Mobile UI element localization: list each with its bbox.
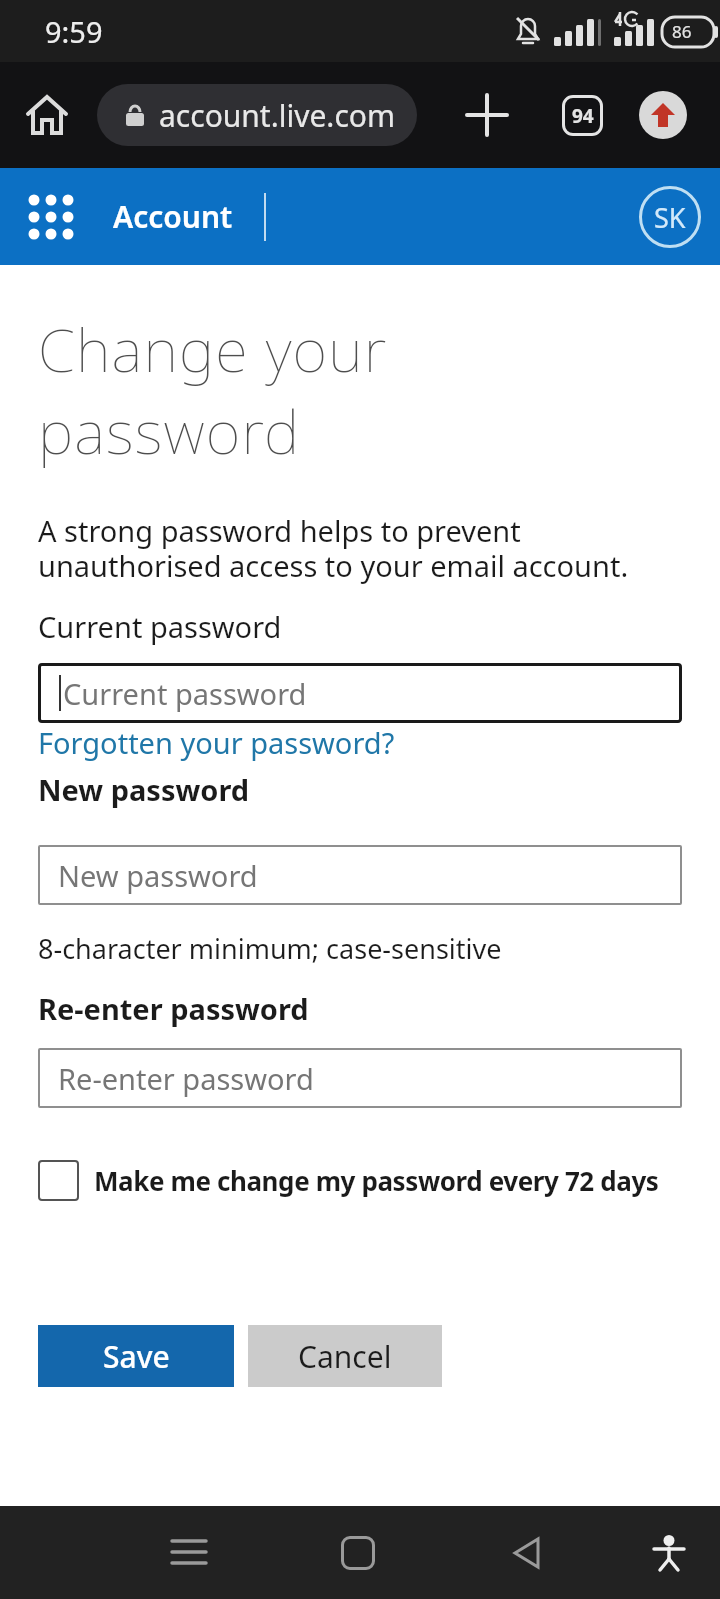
- button[interactable]: [28, 194, 73, 239]
- staticText: 8-character minimum; case-sensitive: [38, 930, 502, 967]
- button[interactable]: Forgotten your password?: [38, 723, 395, 762]
- staticText: account.live.com: [159, 95, 396, 136]
- button[interactable]: [639, 91, 687, 139]
- staticText: Re-enter password: [58, 1059, 314, 1098]
- staticText: 94: [572, 103, 594, 129]
- button[interactable]: account.live.com: [97, 84, 417, 146]
- button[interactable]: New password: [38, 845, 682, 905]
- staticText: Cancel: [298, 1336, 392, 1377]
- staticText: Current password: [63, 674, 307, 713]
- button[interactable]: [341, 1536, 375, 1570]
- button[interactable]: 94: [562, 95, 603, 136]
- button[interactable]: [171, 1535, 207, 1571]
- staticText: Save: [103, 1336, 170, 1377]
- staticText: A strong password helps to prevent unaut…: [38, 511, 629, 586]
- button[interactable]: Re-enter password: [38, 1048, 682, 1108]
- staticText: SK: [654, 199, 686, 236]
- staticText: 86: [672, 20, 692, 43]
- staticText: New password: [58, 856, 258, 895]
- staticText: Change your password: [38, 308, 388, 471]
- button[interactable]: [466, 94, 508, 136]
- button[interactable]: Account: [113, 196, 233, 237]
- button[interactable]: [24, 92, 70, 138]
- staticText: 9:59: [45, 12, 103, 51]
- button[interactable]: Make me change my password every 72 days: [38, 1160, 659, 1201]
- button[interactable]: Current password: [38, 663, 682, 723]
- button[interactable]: Cancel: [248, 1325, 442, 1387]
- staticText: New password: [38, 770, 250, 809]
- button[interactable]: [512, 1538, 542, 1568]
- button[interactable]: SK: [639, 186, 701, 248]
- button[interactable]: [651, 1535, 687, 1571]
- staticText: Make me change my password every 72 days: [94, 1163, 659, 1198]
- button[interactable]: Save: [38, 1325, 234, 1387]
- staticText: Current password: [38, 607, 282, 646]
- staticText: Re-enter password: [38, 989, 309, 1028]
